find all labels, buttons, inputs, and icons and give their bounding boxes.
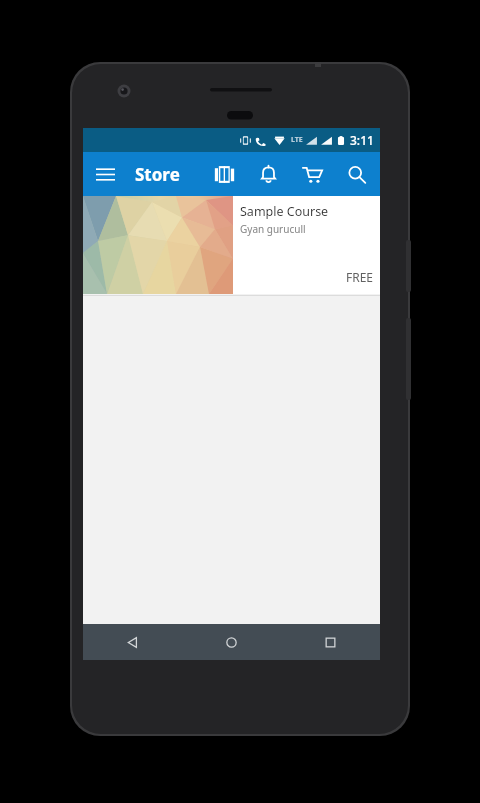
staticText: Gyan gurucull xyxy=(240,222,306,236)
staticText: 3:11 xyxy=(350,132,374,148)
button[interactable]: Open navigation menu xyxy=(83,152,127,196)
staticText: LTE xyxy=(291,135,303,145)
button[interactable]: Sample Course xyxy=(83,196,380,294)
button[interactable]: Shopping cart xyxy=(290,152,334,196)
staticText: FREE xyxy=(240,269,373,285)
staticText: Sample Course xyxy=(240,203,329,220)
button[interactable]: My library xyxy=(202,152,246,196)
button[interactable]: Notifications xyxy=(246,152,290,196)
button[interactable]: Search xyxy=(334,152,378,196)
button[interactable]: Back xyxy=(83,624,182,660)
button[interactable]: Recent apps xyxy=(281,624,380,660)
button[interactable]: Home xyxy=(182,624,281,660)
staticText: Store xyxy=(135,163,180,186)
